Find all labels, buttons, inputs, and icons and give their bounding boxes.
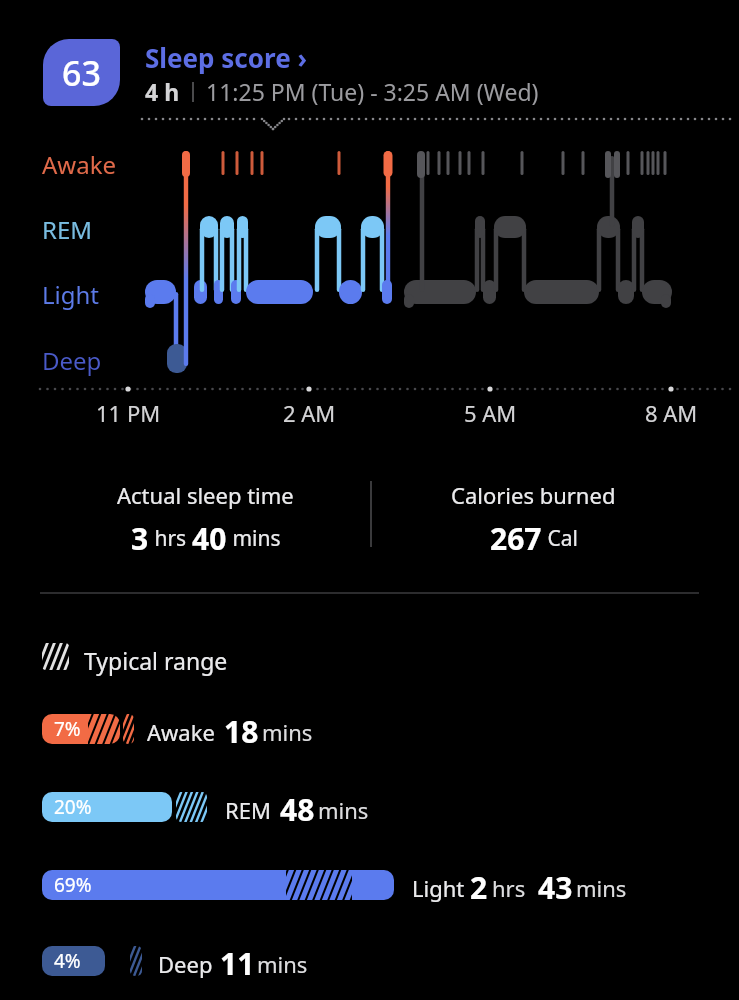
staticText: 20%: [54, 794, 92, 820]
staticText: Typical range: [84, 645, 228, 676]
staticText: mins: [576, 873, 627, 903]
staticText: 2 AM: [283, 398, 336, 428]
staticText: 43: [538, 867, 573, 908]
staticText: 11: [220, 943, 255, 984]
staticText: 40: [192, 518, 227, 555]
staticText: Cal: [542, 524, 578, 553]
staticText: Calories burned: [451, 480, 616, 510]
staticText: 7%: [54, 716, 81, 742]
staticText: hrs: [492, 873, 526, 903]
staticText: 3: [131, 518, 149, 555]
staticText: mins: [257, 949, 308, 979]
staticText: Deep: [158, 949, 213, 979]
staticText: hrs: [149, 524, 192, 553]
staticText: mins: [262, 717, 313, 747]
staticText: Deep: [42, 344, 102, 377]
staticText: 18: [224, 711, 259, 752]
staticText: 11 PM: [96, 398, 161, 428]
staticText: Awake: [42, 148, 117, 181]
staticText: 11:25 PM (Tue) - 3:25 AM (Wed): [206, 76, 539, 107]
staticText: REM: [225, 795, 271, 825]
staticText: 8 AM: [645, 398, 698, 428]
staticText: mins: [318, 795, 369, 825]
staticText: 4 h: [145, 76, 180, 107]
staticText: REM: [42, 213, 93, 246]
staticText: 4%: [54, 948, 81, 974]
staticText: 48: [280, 789, 315, 830]
staticText: 267: [490, 518, 542, 555]
staticText: 5 AM: [464, 398, 517, 428]
staticText: 63: [62, 50, 101, 96]
staticText: 2: [470, 867, 488, 908]
staticText: Light: [42, 278, 100, 311]
staticText: Light: [412, 873, 465, 903]
staticText: 69%: [54, 872, 92, 898]
staticText: mins: [227, 524, 281, 553]
staticText: Sleep score ›: [145, 40, 307, 75]
staticText: Actual sleep time: [117, 480, 294, 510]
staticText: Awake: [147, 717, 215, 747]
